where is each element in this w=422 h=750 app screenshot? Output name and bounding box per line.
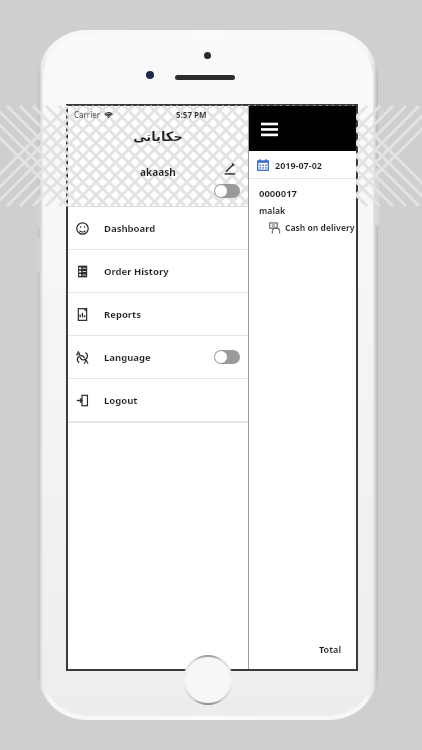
button[interactable]: Menu: [257, 117, 281, 141]
button[interactable]: Toggle: [214, 184, 240, 198]
button[interactable]: Order History: [68, 250, 248, 292]
staticText: malak: [259, 205, 286, 217]
staticText: Cash on delivery: [285, 222, 355, 234]
button[interactable]: 2019-07-02: [249, 151, 356, 178]
button[interactable]: Home: [183, 655, 233, 705]
staticText: Dashboard: [104, 222, 156, 235]
staticText: Total: [319, 643, 342, 655]
button[interactable]: Language: [68, 336, 248, 378]
button[interactable]: Logout: [68, 379, 248, 421]
button[interactable]: Reports: [68, 293, 248, 335]
staticText: حكاياتى: [133, 129, 183, 144]
staticText: Reports: [104, 308, 141, 321]
staticText: 0000017: [259, 187, 298, 200]
staticText: 5:57 PM: [176, 109, 207, 120]
staticText: Logout: [104, 394, 138, 407]
staticText: akaash: [140, 165, 176, 179]
staticText: Order History: [104, 265, 169, 278]
button[interactable]: Dashboard: [68, 207, 248, 249]
staticText: 2019-07-02: [275, 159, 322, 171]
button[interactable]: Edit profile: [220, 160, 238, 178]
staticText: Language: [104, 351, 151, 364]
button[interactable]: 0000017: [249, 179, 356, 234]
staticText: Carrier: [74, 109, 101, 120]
